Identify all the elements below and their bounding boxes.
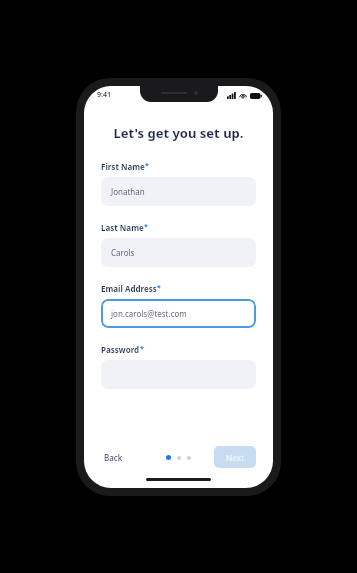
staticText: Back (104, 452, 123, 463)
button[interactable]: Jonathan (101, 177, 256, 206)
button[interactable]: Next (214, 446, 256, 468)
staticText: * (144, 222, 148, 232)
button[interactable]: Carols (101, 238, 256, 267)
staticText: 9:41 (97, 90, 111, 100)
staticText: * (157, 283, 161, 293)
other: Cellular signal (227, 92, 236, 99)
staticText: * (140, 344, 144, 354)
button[interactable]: jon.carols@test.com (101, 299, 256, 328)
staticText: First Name (101, 161, 145, 172)
other: Wi-Fi (239, 92, 247, 99)
button[interactable]: Back (101, 449, 126, 466)
staticText: Let's get you set up. (101, 124, 256, 142)
staticText: Jonathan (111, 186, 145, 197)
staticText: jon.carols@test.com (111, 308, 187, 319)
other: Battery (250, 93, 262, 99)
staticText: * (145, 161, 149, 171)
staticText: Next (226, 452, 245, 463)
staticText: Email Address (101, 283, 157, 294)
staticText: Password (101, 344, 140, 355)
staticText: Carols (111, 247, 135, 258)
staticText: Last Name (101, 222, 144, 233)
